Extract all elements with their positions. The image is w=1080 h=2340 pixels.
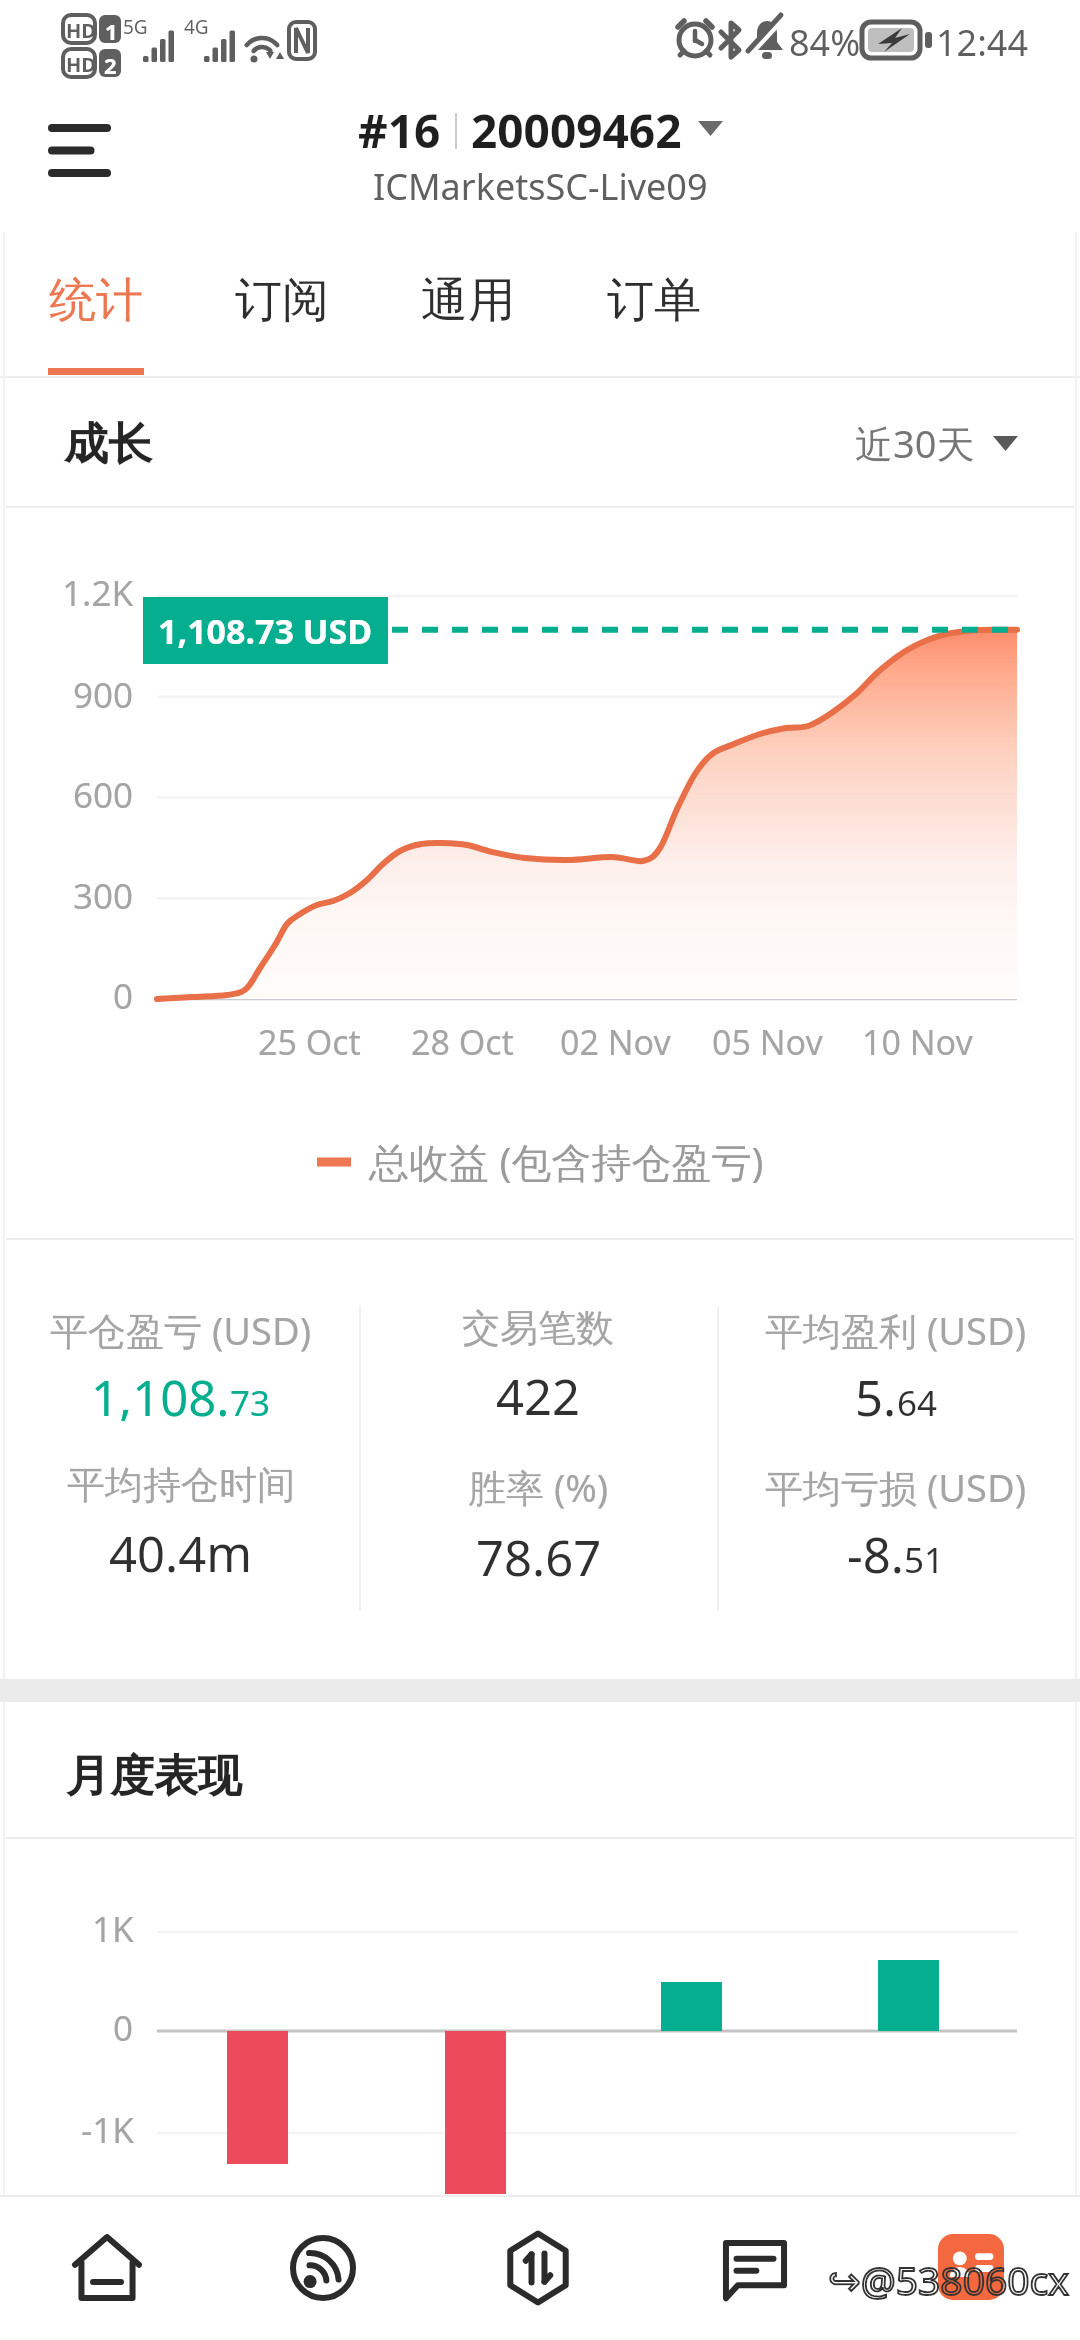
staticText: 1.2K [62,569,134,617]
staticText: 900 [73,671,134,719]
button[interactable]: 统计 [12,232,180,368]
staticText: 25 Oct [258,1019,361,1065]
button[interactable]: Profile [938,2234,1004,2300]
staticText: ICMarketsSC-Live09 [373,162,708,211]
staticText: 1,108. [91,1364,230,1421]
staticText: 64 [897,1379,938,1427]
staticText: 0 [113,2004,134,2052]
staticText: 平均亏损 (USD) [765,1461,1027,1513]
button[interactable]: Signals [251,2195,395,2340]
staticText: 2 [104,50,117,80]
staticText: 02 Nov [560,1019,671,1065]
staticText: 平仓盈亏 (USD) [50,1304,312,1356]
button[interactable]: 胜率 (%) [359,1461,717,1581]
staticText: 平均盈利 (USD) [765,1304,1027,1356]
button[interactable]: 订阅 [198,232,366,368]
staticText: 5. [855,1364,897,1421]
staticText: 51 [904,1536,945,1584]
staticText: 78.67 [476,1524,602,1581]
button[interactable]: 平均持仓时间 [2,1461,360,1581]
staticText: 成长 [64,417,152,472]
staticText: 统计 [49,271,143,330]
staticText: 10 Nov [862,1019,973,1065]
button[interactable]: 交易笔数 [359,1304,717,1424]
staticText: 5G [123,14,148,40]
staticText: 300 [73,872,134,920]
button[interactable]: 平均盈利 (USD) [717,1304,1075,1424]
button[interactable]: Home [35,2195,179,2340]
button[interactable]: Messages [683,2195,827,2340]
staticText: -8. [847,1521,904,1578]
staticText: 422 [496,1363,581,1424]
staticText: 4G [184,14,209,40]
button[interactable]: #16 [358,99,723,211]
staticText: 0 [113,972,134,1020]
staticText: 12:44 [936,18,1029,67]
staticText: 订单 [607,271,701,330]
button[interactable]: 平均亏损 (USD) [717,1461,1075,1581]
staticText: 84% [789,18,861,67]
staticText: 1K [92,1905,134,1953]
staticText: HD [66,17,96,44]
staticText: HD [66,51,96,78]
staticText: 600 [73,771,134,819]
staticText: 73 [230,1379,271,1427]
staticText: 1 [105,16,118,46]
staticText: -1K [81,2106,134,2154]
staticText: 交易笔数 [462,1304,614,1352]
button[interactable]: 近30天 [855,417,1018,469]
staticText: 月度表现 [66,1749,242,1804]
staticText: 通用 [421,271,515,330]
button[interactable]: 平仓盈亏 (USD) [2,1304,360,1424]
staticText: #16 [358,99,441,162]
staticText: 1,108.73 USD [158,608,373,654]
staticText: ↪@538060cx [828,2253,1069,2306]
button[interactable]: Trade [466,2195,610,2340]
staticText: 28 Oct [411,1019,514,1065]
staticText: 胜率 (%) [468,1461,609,1513]
button[interactable]: Menu [24,104,134,196]
button[interactable]: 通用 [384,232,552,368]
staticText: 总收益 (包含持仓盈亏) [369,1134,764,1189]
staticText: 近30天 [855,417,975,469]
staticText: 05 Nov [712,1019,823,1065]
staticText: 40.4m [109,1520,253,1581]
staticText: 订阅 [235,271,329,330]
button[interactable]: 订单 [570,232,738,368]
staticText: 平均持仓时间 [67,1461,295,1509]
staticText: 20009462 [471,99,682,162]
